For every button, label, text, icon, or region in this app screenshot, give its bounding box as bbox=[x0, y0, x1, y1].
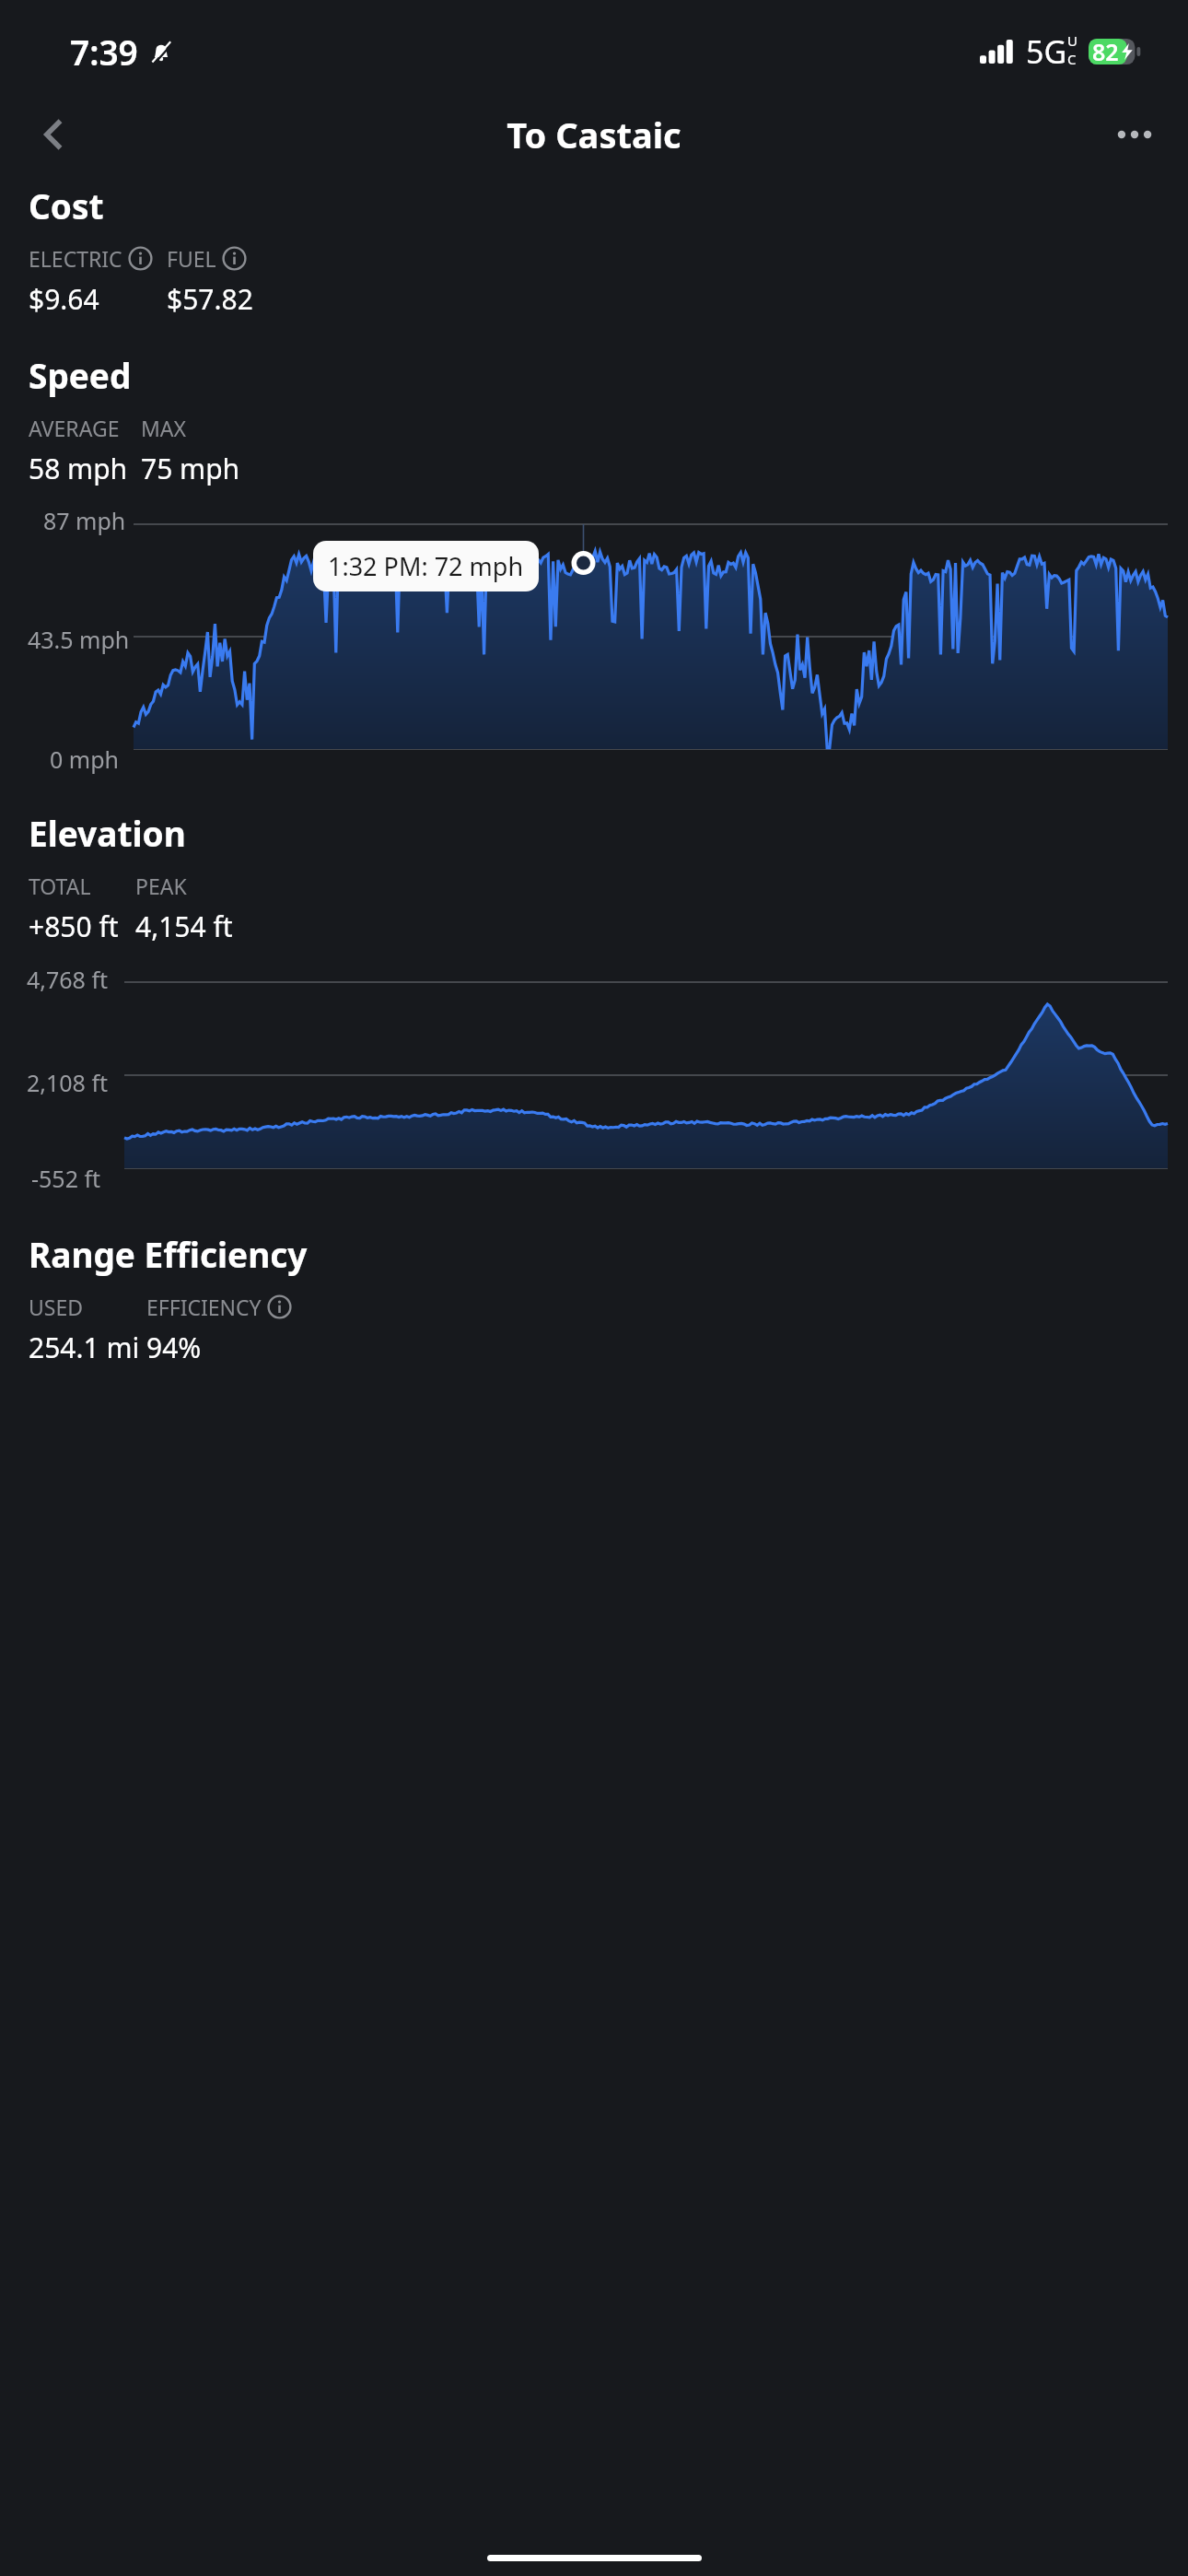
staticText: -552 ft bbox=[31, 1163, 101, 1194]
staticText: 87 mph bbox=[43, 505, 126, 536]
staticText: 43.5 mph bbox=[28, 624, 130, 655]
staticText: EFFICIENCY bbox=[146, 1293, 262, 1321]
button[interactable]: 1:32 PM: 72 mph bbox=[313, 541, 539, 591]
staticText: Cost bbox=[29, 182, 104, 228]
staticText: 0 mph bbox=[50, 744, 120, 775]
staticText: Speed bbox=[29, 352, 132, 398]
staticText: C bbox=[1067, 50, 1077, 68]
staticText: MAX bbox=[141, 414, 187, 442]
staticText: 1:32 PM: 72 mph bbox=[328, 549, 524, 583]
staticText: 4,768 ft bbox=[27, 964, 109, 995]
staticText: PEAK bbox=[135, 872, 187, 900]
staticText: 82 bbox=[1092, 36, 1119, 67]
staticText: AVERAGE bbox=[29, 414, 120, 442]
staticText: USED bbox=[29, 1293, 84, 1321]
staticText: To Castaic bbox=[507, 111, 681, 158]
staticText: $9.64 bbox=[29, 280, 99, 318]
staticText: FUEL bbox=[167, 244, 216, 273]
staticText: 4,154 ft bbox=[135, 907, 233, 945]
staticText: ELECTRIC bbox=[29, 244, 122, 273]
staticText: 94% bbox=[146, 1329, 202, 1366]
staticText: U bbox=[1067, 31, 1077, 50]
staticText: 58 mph bbox=[29, 450, 128, 487]
button[interactable]: Back bbox=[22, 101, 88, 168]
staticText: 254.1 mi bbox=[29, 1329, 140, 1366]
staticText: +850 ft bbox=[29, 907, 119, 945]
button[interactable]: More options bbox=[1101, 101, 1168, 168]
staticText: $57.82 bbox=[167, 280, 253, 318]
staticText: Elevation bbox=[29, 810, 186, 856]
staticText: 5G bbox=[1026, 30, 1067, 73]
staticText: TOTAL bbox=[29, 872, 91, 900]
staticText: Range Efficiency bbox=[29, 1231, 308, 1277]
staticText: 7:39 bbox=[70, 29, 138, 75]
staticText: 2,108 ft bbox=[27, 1067, 109, 1098]
staticText: 75 mph bbox=[141, 450, 240, 487]
